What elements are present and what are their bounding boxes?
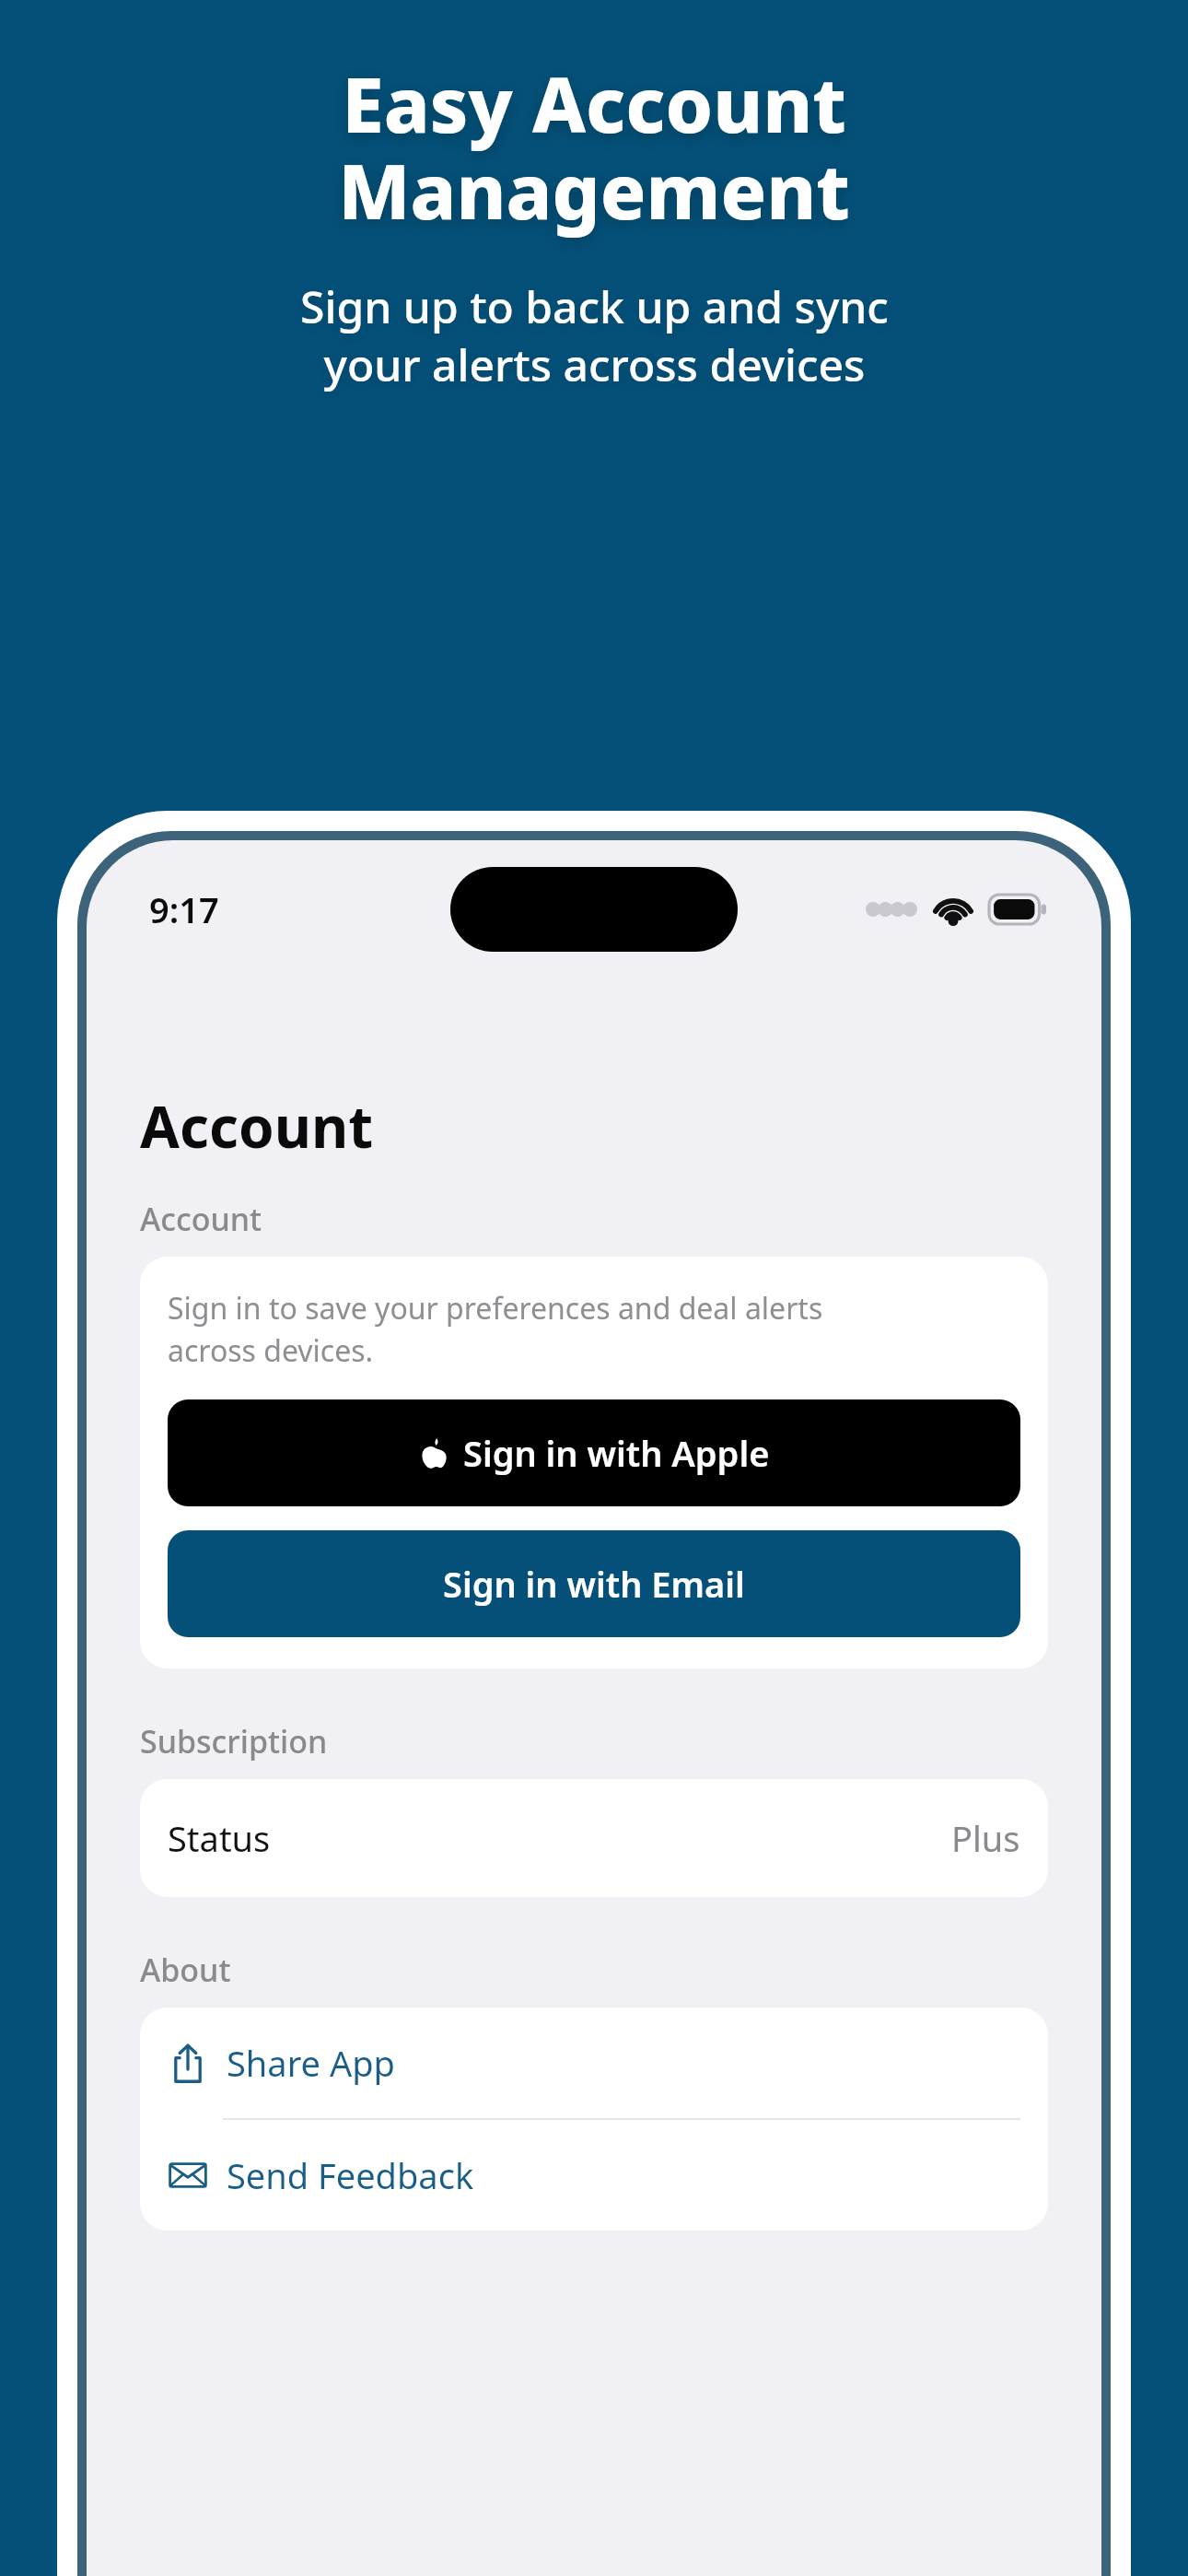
staticText: Sign in with Email (443, 1560, 745, 1608)
button[interactable]: Sign in with Apple (168, 1399, 1020, 1506)
staticText: Plus (951, 1814, 1020, 1862)
staticText: Subscription (140, 1720, 328, 1762)
staticText: Sign up to back up and sync your alerts … (300, 276, 889, 394)
button[interactable]: Sign in with Email (168, 1530, 1020, 1637)
staticText: Easy Account Management (338, 52, 850, 241)
staticText: Send Feedback (227, 2151, 474, 2199)
staticText: About (140, 1949, 231, 1991)
other: Share App (168, 2043, 208, 2083)
button[interactable]: Share App (140, 2008, 1048, 2118)
staticText: Sign in to save your preferences and dea… (168, 1288, 823, 1370)
staticText: Sign in with Apple (463, 1429, 770, 1477)
staticText: Status (168, 1814, 271, 1862)
staticText: Account (140, 1087, 374, 1165)
other: Send Feedback (168, 2155, 208, 2195)
staticText: Account (140, 1198, 262, 1240)
button[interactable]: Send Feedback (140, 2120, 1048, 2231)
staticText: Share App (227, 2039, 395, 2087)
button[interactable]: Status (140, 1779, 1048, 1897)
staticText: 9:17 (149, 885, 219, 933)
